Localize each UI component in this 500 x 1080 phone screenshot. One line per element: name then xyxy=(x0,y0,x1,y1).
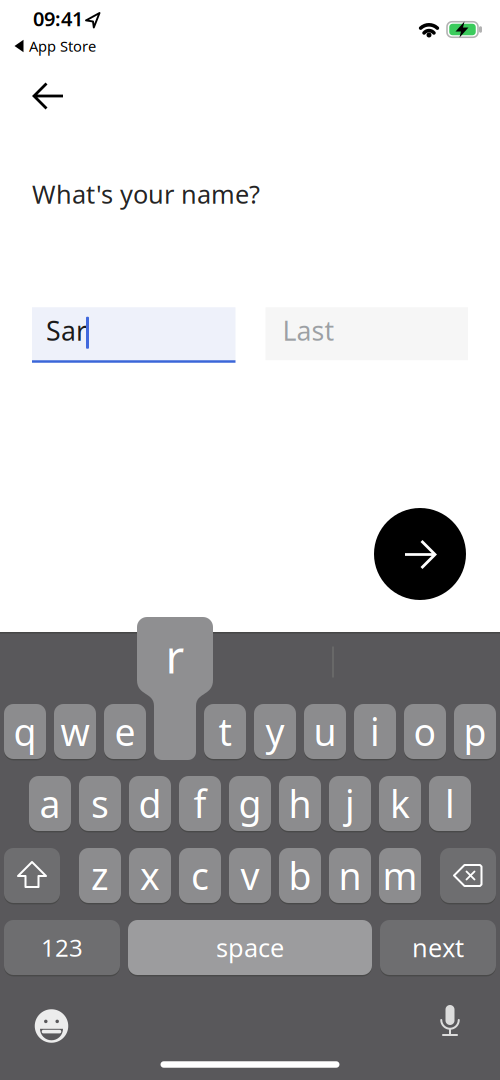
button[interactable]: v xyxy=(229,847,271,904)
button[interactable]: h xyxy=(279,775,321,832)
staticText: l xyxy=(445,779,455,828)
button[interactable]: e xyxy=(104,703,146,760)
staticText: i xyxy=(370,707,380,756)
staticText: Last xyxy=(282,313,334,348)
staticText: t xyxy=(218,707,231,756)
staticText: Sar xyxy=(46,313,87,348)
button[interactable]: Dictate xyxy=(430,1004,470,1040)
staticText: What's your name? xyxy=(32,177,260,211)
button[interactable]: 123 xyxy=(4,919,120,976)
button[interactable]: i xyxy=(354,703,396,760)
staticText: c xyxy=(191,851,209,900)
button[interactable]: d xyxy=(129,775,171,832)
button[interactable]: n xyxy=(329,847,371,904)
button[interactable]: l xyxy=(429,775,471,832)
staticText: j xyxy=(345,779,355,828)
button[interactable]: j xyxy=(329,775,371,832)
button[interactable]: Back xyxy=(26,74,70,118)
button[interactable]: w xyxy=(54,703,96,760)
staticText: space xyxy=(216,931,284,964)
staticText: d xyxy=(138,779,161,828)
button[interactable]: next xyxy=(380,919,496,976)
staticText: s xyxy=(91,779,109,828)
staticText: o xyxy=(413,707,436,756)
button[interactable]: q xyxy=(4,703,46,760)
button[interactable]: m xyxy=(379,847,421,904)
button[interactable]: o xyxy=(404,703,446,760)
button[interactable]: Back to App Store xyxy=(14,36,96,56)
button[interactable]: u xyxy=(304,703,346,760)
staticText: k xyxy=(390,779,410,828)
staticText: y xyxy=(265,707,284,756)
staticText: h xyxy=(288,779,311,828)
button[interactable]: space xyxy=(128,919,372,976)
staticText: v xyxy=(240,851,259,900)
button[interactable]: g xyxy=(229,775,271,832)
staticText: q xyxy=(13,707,36,756)
button[interactable]: z xyxy=(79,847,121,904)
staticText: w xyxy=(60,707,89,756)
staticText: p xyxy=(463,707,486,756)
button[interactable]: Delete xyxy=(440,847,496,904)
staticText: m xyxy=(382,851,417,900)
button[interactable]: x xyxy=(129,847,171,904)
button[interactable]: b xyxy=(279,847,321,904)
button[interactable]: t xyxy=(204,703,246,760)
button[interactable]: p xyxy=(454,703,496,760)
button[interactable]: s xyxy=(79,775,121,832)
staticText: next xyxy=(412,931,464,964)
staticText: z xyxy=(91,851,109,900)
staticText: g xyxy=(238,779,261,828)
staticText: f xyxy=(193,779,206,828)
button[interactable]: Last name xyxy=(265,306,468,361)
staticText: n xyxy=(338,851,361,900)
button[interactable]: y xyxy=(254,703,296,760)
button[interactable]: c xyxy=(179,847,221,904)
staticText: App Store xyxy=(29,36,96,56)
staticText: u xyxy=(313,707,336,756)
button[interactable]: a xyxy=(29,775,71,832)
staticText: b xyxy=(288,851,311,900)
button[interactable]: First name xyxy=(32,306,235,361)
button[interactable]: Shift xyxy=(4,847,60,904)
button[interactable]: Next xyxy=(374,508,466,600)
staticText: 123 xyxy=(41,932,83,963)
staticText: x xyxy=(140,851,160,900)
staticText: r xyxy=(165,626,184,686)
staticText: a xyxy=(39,779,60,828)
staticText: 09:41 xyxy=(33,5,83,32)
button[interactable]: Emoji xyxy=(34,1009,68,1043)
button[interactable]: f xyxy=(179,775,221,832)
staticText: e xyxy=(114,707,135,756)
button[interactable]: k xyxy=(379,775,421,832)
